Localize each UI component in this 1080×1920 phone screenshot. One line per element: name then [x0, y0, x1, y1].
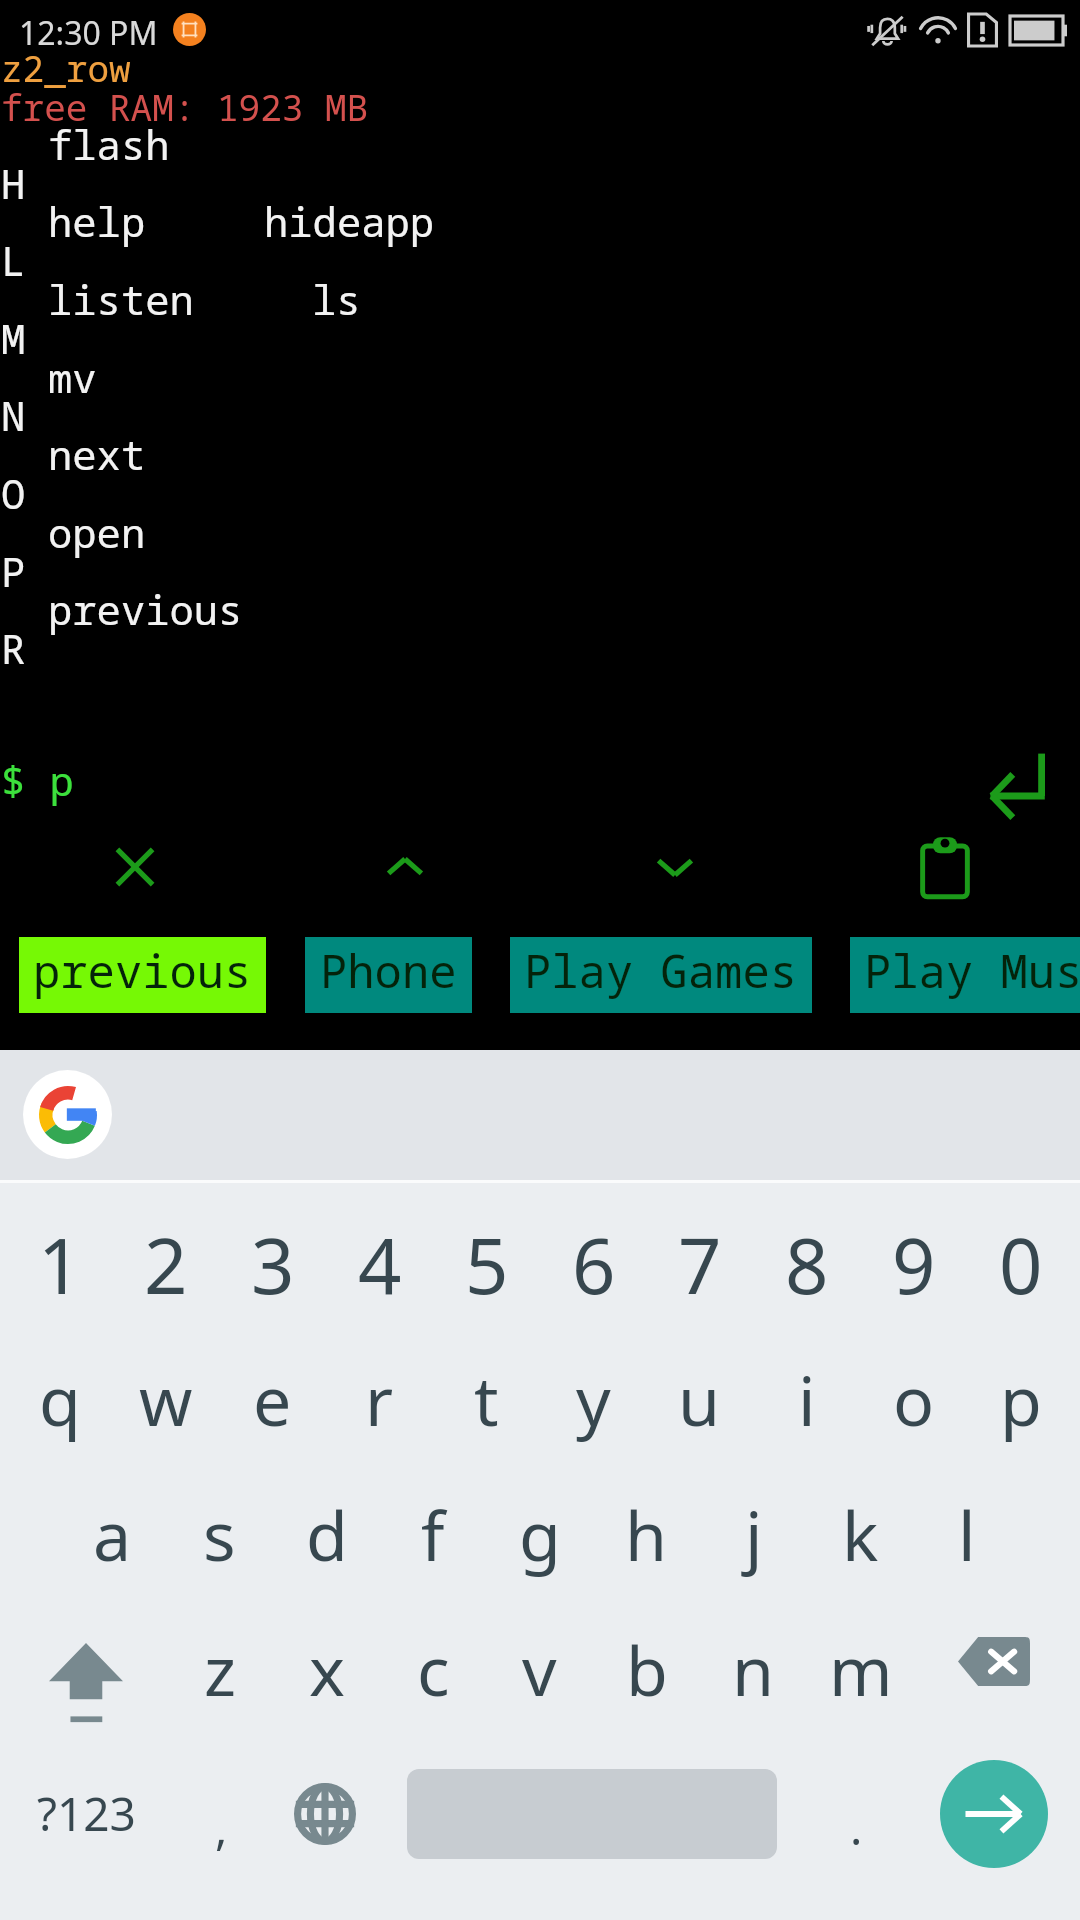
button[interactable]: r	[326, 1332, 433, 1467]
button[interactable]: 6	[540, 1197, 647, 1332]
staticText: 1	[38, 1213, 82, 1317]
staticText: h	[625, 1488, 668, 1581]
button[interactable]: x	[273, 1602, 380, 1737]
staticText: mv	[48, 350, 97, 405]
button[interactable]: Backspace	[914, 1602, 1074, 1737]
button[interactable]: Phone	[305, 937, 472, 1013]
staticText: free RAM: 1923 MB	[1, 83, 369, 132]
button[interactable]: a	[59, 1467, 166, 1602]
button[interactable]: w	[112, 1332, 219, 1467]
button[interactable]: o	[860, 1332, 967, 1467]
staticText: M	[1, 311, 26, 366]
button[interactable]: q	[6, 1332, 113, 1467]
staticText: H	[1, 156, 26, 211]
button[interactable]: 3	[219, 1197, 326, 1332]
button[interactable]: Space	[386, 1746, 798, 1881]
staticText: d	[306, 1488, 348, 1581]
staticText: L	[1, 233, 26, 288]
staticText: t	[474, 1353, 499, 1446]
button[interactable]: 5	[433, 1197, 540, 1332]
button[interactable]: b	[593, 1602, 700, 1737]
button[interactable]: u	[646, 1332, 753, 1467]
staticText: l	[958, 1488, 976, 1581]
staticText: x	[309, 1623, 345, 1716]
button[interactable]: .	[798, 1746, 914, 1881]
staticText: f	[421, 1488, 445, 1581]
staticText: s	[203, 1488, 236, 1581]
staticText: b	[626, 1623, 668, 1716]
staticText: p	[1000, 1353, 1042, 1446]
button[interactable]: Scroll up	[270, 829, 540, 905]
button[interactable]: j	[700, 1467, 807, 1602]
staticText: .	[850, 1796, 863, 1859]
button[interactable]: 7	[646, 1197, 753, 1332]
button[interactable]: Run command	[976, 748, 1056, 828]
button[interactable]: t	[433, 1332, 540, 1467]
staticText: O	[1, 466, 26, 521]
staticText: 6	[572, 1213, 616, 1317]
button[interactable]: ?123	[6, 1746, 166, 1881]
staticText: q	[39, 1353, 81, 1446]
staticText: 9	[892, 1213, 936, 1317]
button[interactable]: s	[166, 1467, 273, 1602]
staticText: 2	[144, 1213, 188, 1317]
button[interactable]: n	[700, 1602, 807, 1737]
staticText: ?123	[37, 1782, 136, 1845]
button[interactable]: y	[540, 1332, 647, 1467]
button[interactable]: 0	[967, 1197, 1074, 1332]
button[interactable]: 4	[326, 1197, 433, 1332]
button[interactable]: p	[967, 1332, 1074, 1467]
staticText: previous	[48, 582, 243, 637]
staticText: c	[417, 1623, 450, 1716]
button[interactable]: 8	[753, 1197, 860, 1332]
button[interactable]: 9	[860, 1197, 967, 1332]
button[interactable]: Clear input	[0, 829, 270, 905]
button[interactable]: Play Games	[510, 937, 812, 1013]
button[interactable]: Play Music	[850, 937, 1080, 1013]
staticText: flash	[48, 117, 170, 172]
button[interactable]: previous	[19, 937, 266, 1013]
button[interactable]: ,	[166, 1746, 276, 1881]
button[interactable]: l	[913, 1467, 1020, 1602]
staticText: ls	[312, 272, 361, 327]
staticText: 12:30 PM	[19, 11, 158, 55]
staticText: next	[48, 427, 146, 482]
staticText: $ p	[1, 753, 74, 808]
button[interactable]: Shift	[6, 1602, 166, 1737]
staticText: w	[139, 1353, 193, 1446]
staticText: g	[519, 1488, 561, 1581]
staticText: e	[253, 1353, 292, 1446]
staticText: m	[829, 1623, 893, 1716]
button[interactable]: Google Assistant	[23, 1070, 112, 1159]
button[interactable]: m	[807, 1602, 914, 1737]
staticText: z	[204, 1623, 236, 1716]
staticText: listen	[48, 272, 194, 327]
button[interactable]: g	[486, 1467, 593, 1602]
button[interactable]: Enter	[914, 1746, 1074, 1881]
staticText: o	[893, 1353, 935, 1446]
staticText: r	[365, 1353, 394, 1446]
button[interactable]: c	[380, 1602, 487, 1737]
staticText: u	[678, 1353, 721, 1446]
button[interactable]: Scroll down	[540, 829, 810, 905]
button[interactable]: h	[593, 1467, 700, 1602]
staticText: help	[48, 194, 146, 249]
button[interactable]: 2	[112, 1197, 219, 1332]
button[interactable]: Paste	[810, 829, 1080, 905]
button[interactable]: i	[753, 1332, 860, 1467]
button[interactable]: Change language	[270, 1746, 380, 1881]
button[interactable]: d	[273, 1467, 380, 1602]
staticText: hideapp	[264, 194, 435, 249]
staticText: a	[93, 1488, 132, 1581]
staticText: 7	[678, 1213, 722, 1317]
staticText: k	[842, 1488, 879, 1581]
staticText: 5	[465, 1213, 509, 1317]
button[interactable]: k	[807, 1467, 914, 1602]
button[interactable]: v	[486, 1602, 593, 1737]
button[interactable]: f	[379, 1467, 486, 1602]
button[interactable]: e	[219, 1332, 326, 1467]
button[interactable]: z	[166, 1602, 273, 1737]
staticText: ,	[215, 1796, 228, 1859]
button[interactable]: 1	[6, 1197, 113, 1332]
staticText: j	[745, 1488, 763, 1581]
